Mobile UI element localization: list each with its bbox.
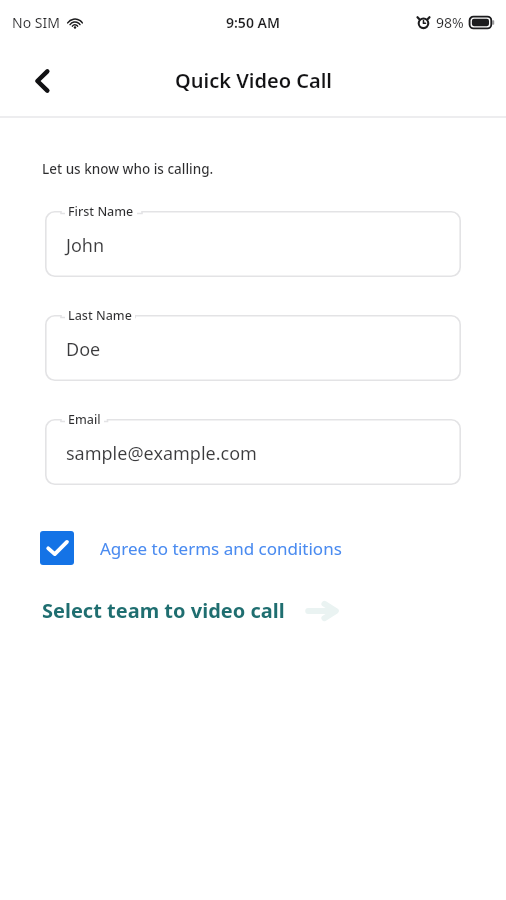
button[interactable]: Back	[20, 59, 64, 103]
staticText: sample@example.com	[66, 441, 257, 466]
staticText: Last Name	[68, 307, 132, 324]
staticText: 98%	[436, 13, 464, 32]
staticText: Email	[68, 411, 101, 428]
staticText: Agree to terms and conditions	[100, 537, 342, 560]
staticText: Quick Video Call	[175, 67, 332, 94]
staticText: 9:50 AM	[226, 13, 280, 32]
button[interactable]: Doe	[45, 315, 461, 381]
button[interactable]: Select team to video call	[42, 597, 464, 624]
staticText: Doe	[66, 337, 101, 362]
staticText: Select team to video call	[42, 597, 285, 624]
staticText: Let us know who is calling.	[42, 160, 214, 178]
button[interactable]: sample@example.com	[45, 419, 461, 485]
button[interactable]: John	[45, 211, 461, 277]
staticText: First Name	[68, 203, 134, 220]
staticText: No SIM	[12, 13, 60, 32]
staticText: John	[66, 233, 105, 258]
button[interactable]: Agree to terms and conditions	[40, 531, 466, 565]
